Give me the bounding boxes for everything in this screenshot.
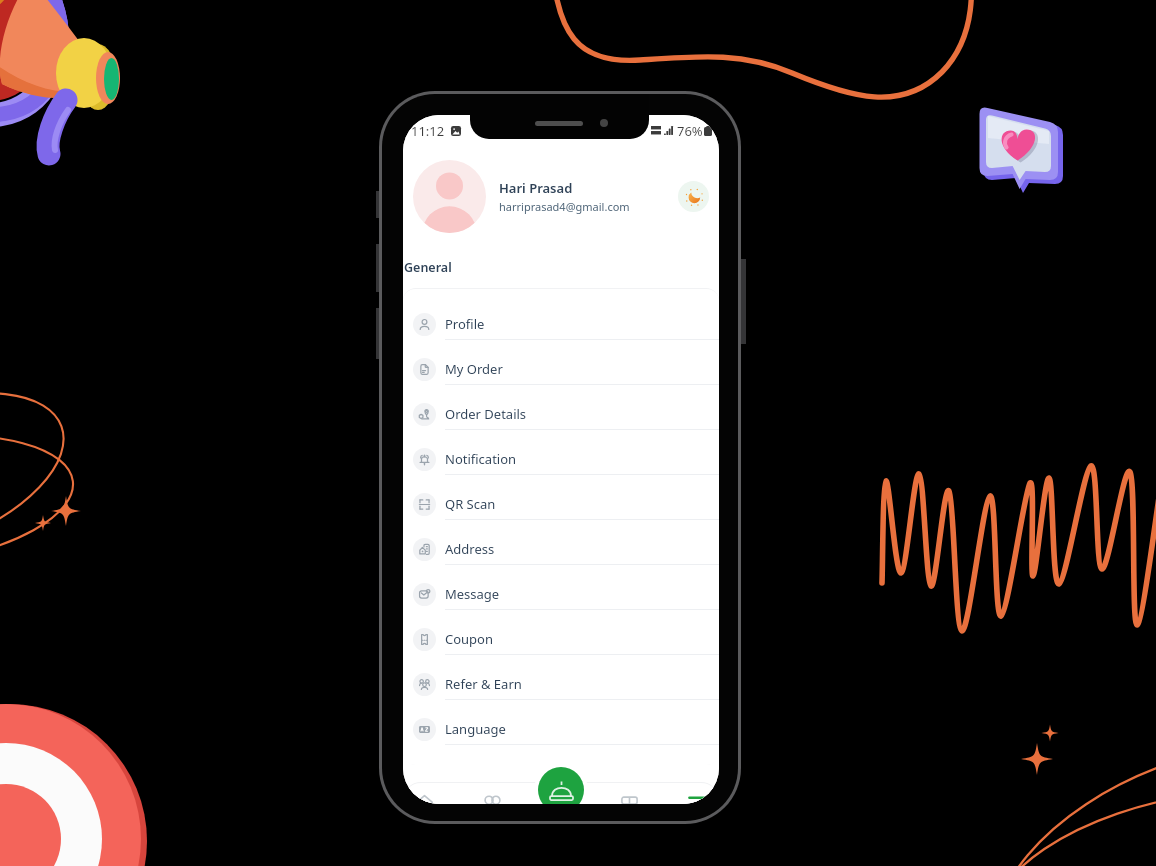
staticText: Hari Prasad — [499, 179, 573, 197]
staticText: Notification — [445, 450, 517, 468]
staticText: My Order — [445, 360, 503, 378]
staticText: Language — [445, 720, 506, 738]
staticText: Address — [445, 540, 495, 558]
staticText: harriprasad4@gmail.com — [499, 199, 630, 214]
button[interactable]: Profile — [403, 309, 719, 354]
button[interactable]: Home — [415, 793, 434, 804]
staticText: QR Scan — [445, 495, 496, 513]
button[interactable]: Notification — [403, 444, 719, 489]
button[interactable]: Menu — [620, 793, 639, 804]
button[interactable]: Order Details — [403, 399, 719, 444]
button[interactable]: Order food — [538, 767, 584, 804]
button[interactable]: Language — [403, 714, 719, 759]
staticText: 76% — [677, 122, 703, 140]
button[interactable]: Toggle dark mode — [678, 181, 709, 212]
staticText: Order Details — [445, 405, 527, 423]
button[interactable]: Cart — [688, 793, 707, 804]
button[interactable]: QR Scan — [403, 489, 719, 534]
button[interactable]: Message — [403, 579, 719, 624]
button[interactable]: Refer & Earn — [403, 669, 719, 714]
button[interactable]: Favourites — [483, 793, 502, 804]
button[interactable]: Coupon — [403, 624, 719, 669]
staticText: General — [404, 259, 452, 276]
staticText: Coupon — [445, 630, 494, 648]
staticText: 11:12 — [411, 122, 445, 140]
button[interactable]: My Order — [403, 354, 719, 399]
staticText: Profile — [445, 315, 485, 333]
staticText: Refer & Earn — [445, 675, 522, 693]
staticText: Message — [445, 585, 500, 603]
button[interactable]: Address — [403, 534, 719, 579]
